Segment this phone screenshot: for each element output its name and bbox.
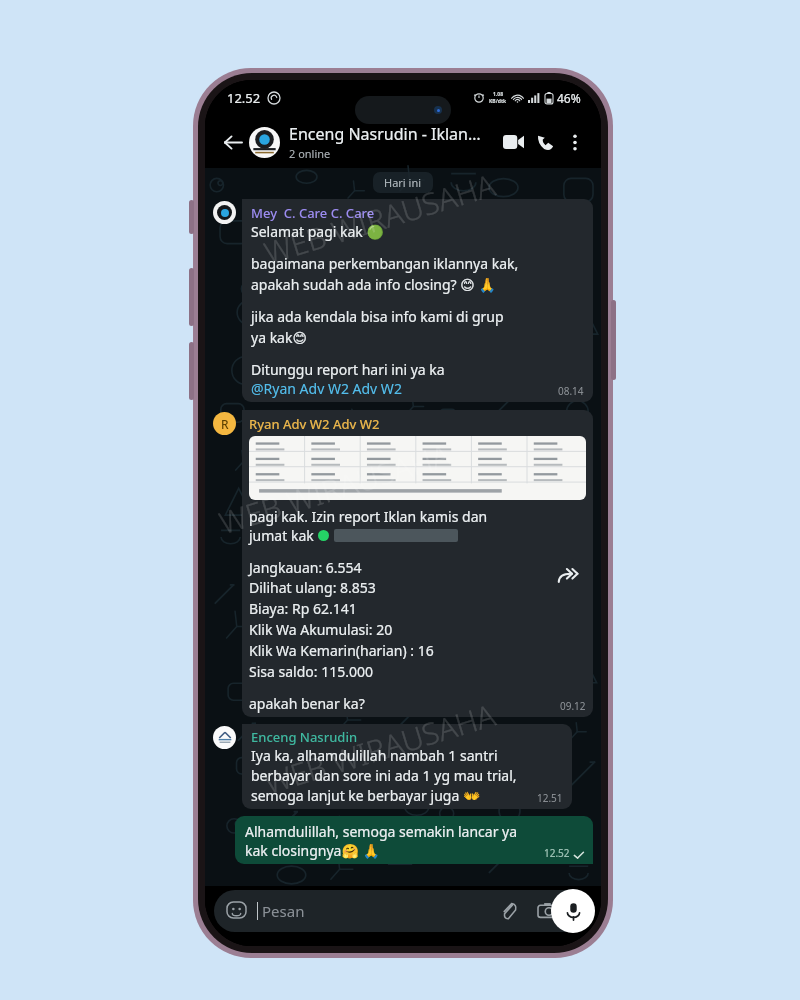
staticText: KB/dtk [489, 98, 507, 105]
staticText: WEB WIRAUSAHA [259, 694, 500, 803]
staticText: 46% [557, 90, 581, 106]
other: Emoji [226, 901, 247, 922]
staticText: Mey C. Care C. Care [251, 204, 375, 222]
staticText: apakah benar ka? [249, 694, 560, 713]
staticText: Selamat pagi kak 🟢 [251, 222, 384, 241]
staticText: kak closingnya🤗 🙏 [245, 841, 536, 860]
button[interactable]: Enceng Nasrudin [242, 724, 572, 809]
staticText: 08.14 [558, 384, 584, 398]
staticText: @Ryan Adv W2 Adv W2 [251, 379, 558, 398]
button[interactable]: Back [217, 127, 247, 157]
staticText: Hari ini [384, 175, 422, 190]
button[interactable]: Emoji [214, 890, 592, 932]
button[interactable]: Image attachment [249, 436, 586, 500]
staticText: 1.08 [493, 91, 503, 98]
staticText: 09.12 [560, 699, 586, 713]
staticText: WEB WIRAUSAHA [214, 434, 455, 543]
button[interactable]: Attach [498, 900, 520, 922]
staticText: Ryan Adv W2 Adv W2 [249, 415, 380, 433]
button[interactable]: Voice call [529, 126, 561, 158]
staticText: Enceng Nasrudin [251, 728, 358, 746]
staticText: WEB WIRAUSAHA [259, 164, 500, 273]
staticText: Ditunggu report hari ini ya ka [251, 360, 449, 379]
button[interactable]: Forward [557, 566, 579, 588]
staticText: 12.51 [537, 791, 563, 805]
button[interactable]: Ryan Adv W2 Adv W2 [242, 410, 593, 717]
staticText: 12.52 [227, 89, 261, 107]
staticText: Alhamdulillah, semoga semakin lancar ya [245, 822, 518, 841]
staticText: semoga lanjut ke berbayar juga 👐 [251, 786, 537, 805]
staticText: jumat kak [249, 526, 318, 545]
staticText: 2 online [289, 146, 331, 161]
staticText: bagaimana perkembangan iklannya kak, apa… [251, 254, 519, 294]
staticText: R [221, 416, 229, 432]
staticText: 12.52 [544, 846, 570, 860]
staticText: Jangkauan: 6.554 Dilihat ulang: 8.853 Bi… [249, 558, 434, 682]
staticText: pagi kak. Izin report Iklan kamis dan [249, 507, 488, 526]
button[interactable]: Camera [538, 900, 560, 922]
button[interactable]: Enceng Nasrudin - Iklan… [289, 123, 491, 161]
staticText: jika ada kendala bisa info kami di grup … [251, 307, 504, 347]
staticText: Pesan [262, 901, 498, 921]
button[interactable]: Voice message [551, 889, 595, 933]
button[interactable]: Video call [497, 126, 529, 158]
staticText: Enceng Nasrudin - Iklan… [289, 123, 481, 145]
staticText: Iya ka, alhamdulillah nambah 1 santri be… [251, 746, 517, 786]
button[interactable]: Mey C. Care C. Care [242, 199, 593, 402]
button[interactable]: Profile photo [249, 127, 280, 158]
button[interactable]: Alhamdulillah, semoga semakin lancar ya [235, 816, 593, 864]
button[interactable]: More options [561, 128, 589, 156]
